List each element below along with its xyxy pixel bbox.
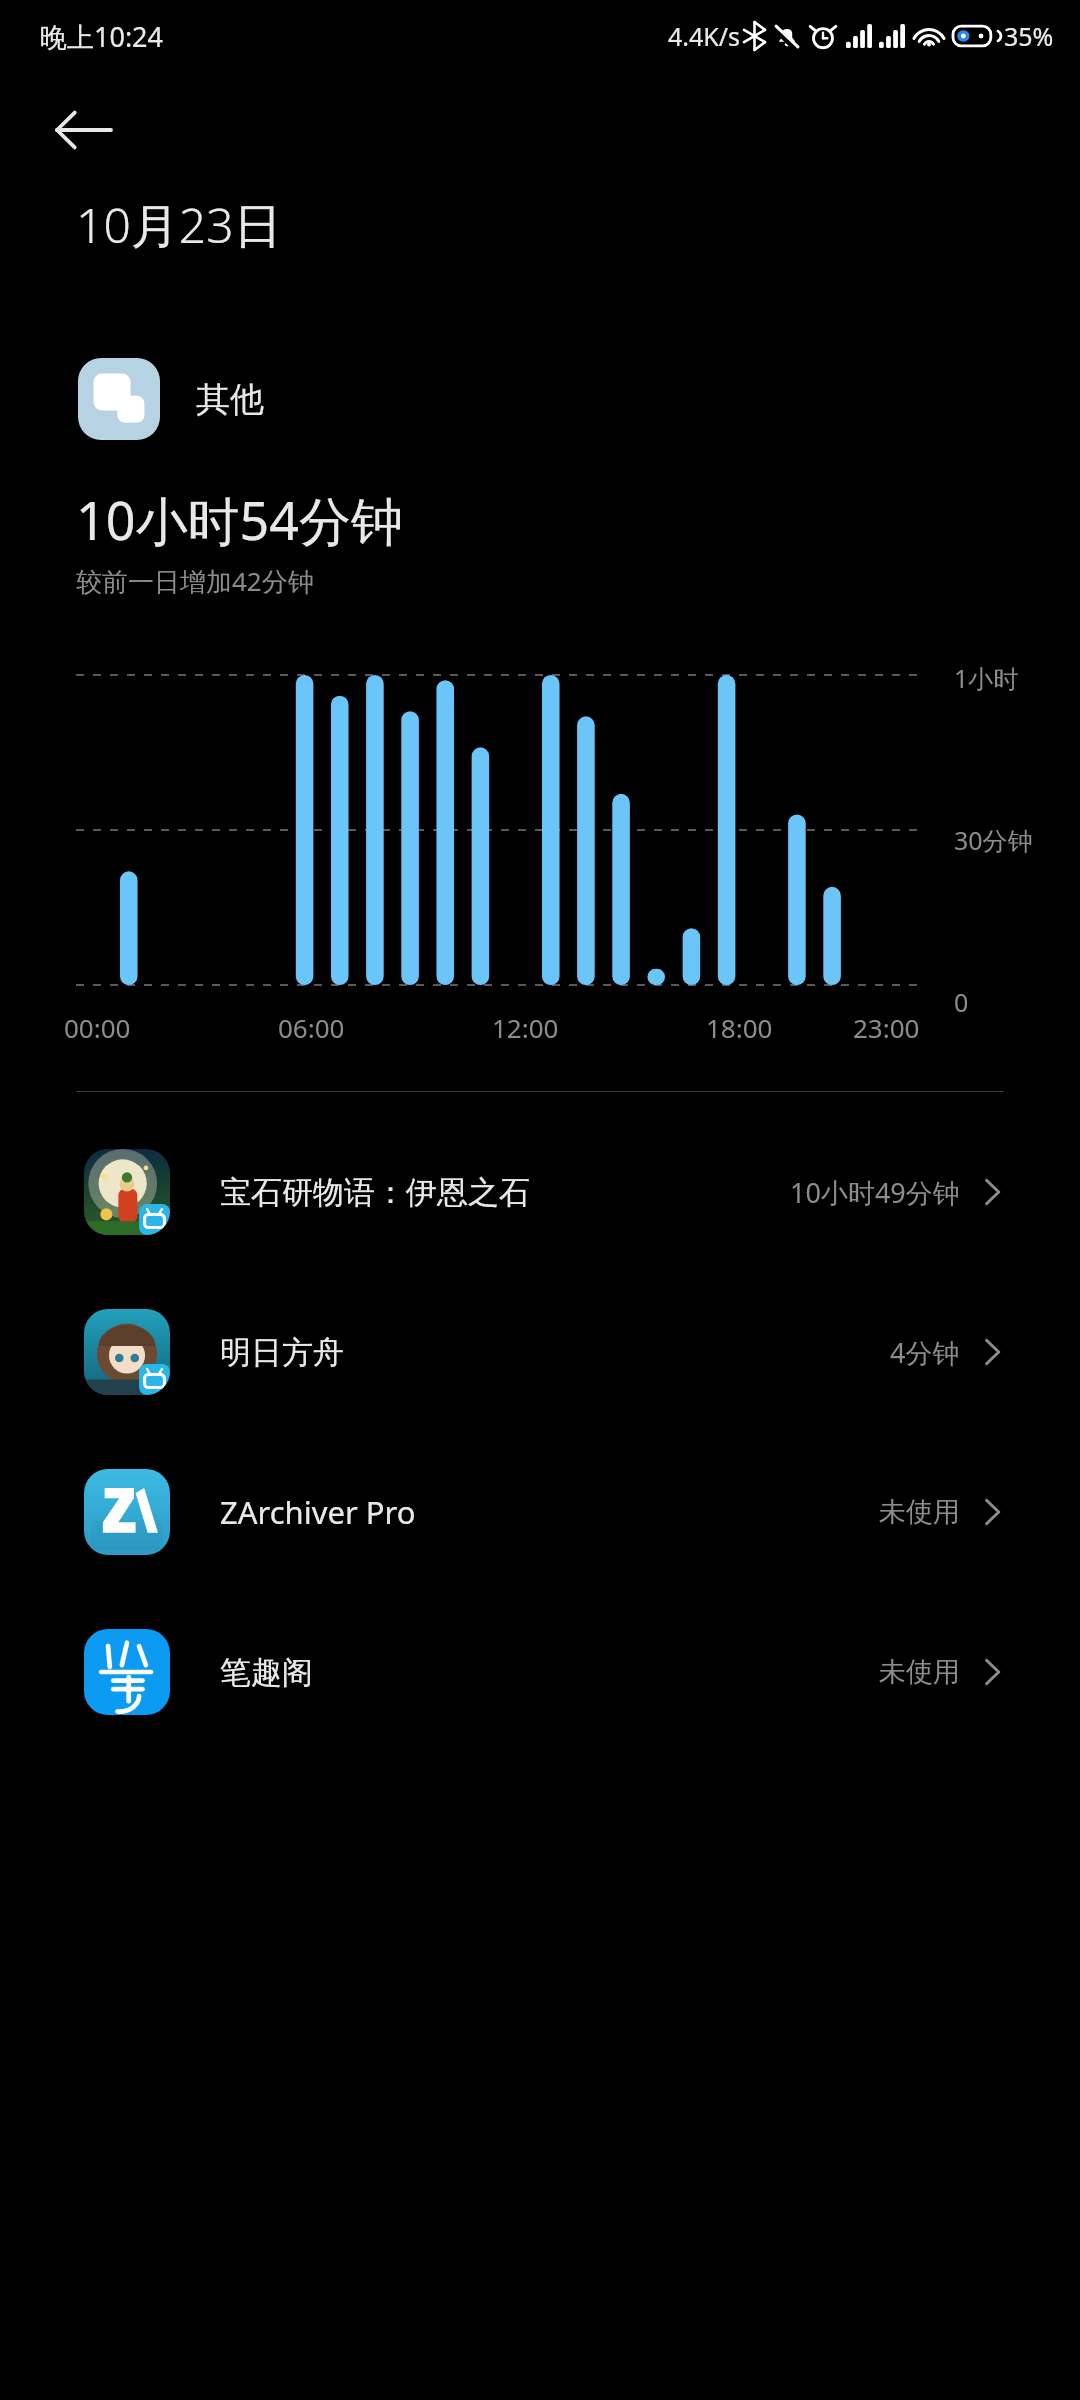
staticText: 较前一日增加42分钟 [76,563,314,599]
button[interactable]: 笔趣阁 [0,1592,1080,1752]
staticText: 23:00 [853,1010,920,1045]
staticText: 4.4K/s [668,19,741,53]
staticText: 0 [954,985,969,1019]
staticText: 30分钟 [954,823,1033,857]
staticText: 未使用 [879,1495,960,1529]
staticText: 00:00 [64,1010,131,1045]
staticText: 06:00 [278,1010,345,1045]
staticText: 宝石研物语：伊恩之石 [220,1173,790,1212]
staticText: 明日方舟 [220,1333,890,1372]
staticText: 10小时54分钟 [76,484,403,555]
staticText: 笔趣阁 [220,1653,879,1692]
staticText: 1小时 [954,661,1019,695]
staticText: 35% [1004,19,1054,53]
staticText: 10小时49分钟 [790,1174,960,1211]
button[interactable]: 宝石研物语：伊恩之石 [0,1112,1080,1272]
staticText: ZArchiver Pro [220,1491,879,1533]
button[interactable]: Back [40,86,128,174]
button[interactable]: 明日方舟 [0,1272,1080,1432]
staticText: 晚上10:24 [40,18,164,55]
staticText: 18:00 [706,1010,773,1045]
staticText: 其他 [196,378,264,421]
staticText: 未使用 [879,1655,960,1689]
staticText: 12:00 [492,1010,559,1045]
staticText: 4分钟 [890,1334,960,1371]
staticText: 10月23日 [76,192,282,258]
button[interactable]: ZArchiver Pro [0,1432,1080,1592]
